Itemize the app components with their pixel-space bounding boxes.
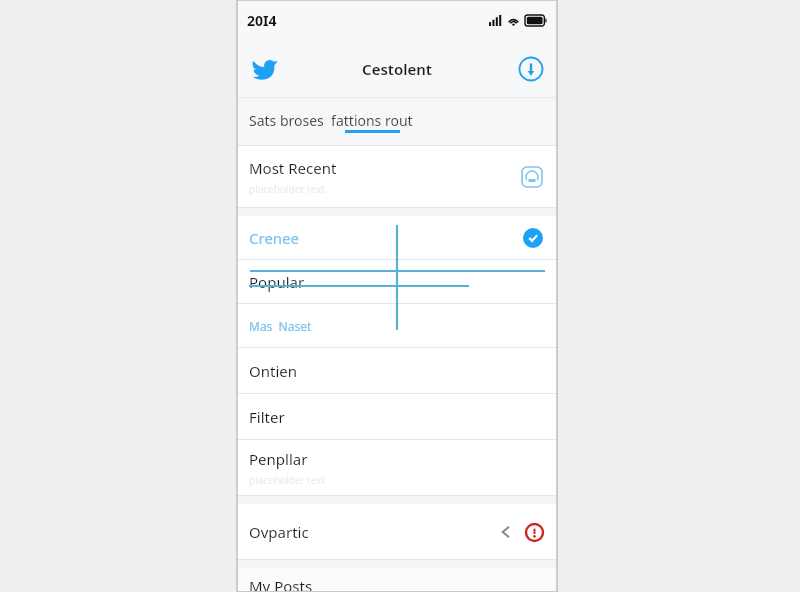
button[interactable]: Filter — [237, 394, 557, 440]
button[interactable]: Popular — [237, 260, 557, 304]
staticText: 20I4 — [247, 11, 277, 30]
staticText: Sats broses fattions rout — [249, 111, 413, 130]
button[interactable]: Ovpartic — [237, 504, 557, 560]
button[interactable]: My Posts — [237, 568, 557, 592]
button[interactable]: Mas Naset — [237, 304, 557, 348]
staticText: My Posts — [249, 576, 313, 592]
button[interactable]: Download update — [513, 51, 549, 87]
button[interactable]: Selected — [519, 224, 547, 252]
button[interactable]: Refresh timeline — [517, 162, 547, 192]
button[interactable]: Sats broses fattions rout — [237, 98, 557, 146]
button[interactable]: Penpllar — [237, 440, 557, 496]
staticText: Crenee — [249, 228, 300, 248]
button[interactable]: Alert — [521, 519, 547, 545]
button[interactable]: Ontien — [237, 348, 557, 394]
button[interactable]: Most Recent — [237, 146, 557, 208]
staticText: Ontien — [249, 361, 298, 381]
staticText: Filter — [249, 407, 285, 427]
staticText: Ovpartic — [249, 522, 309, 542]
button[interactable]: Crenee — [237, 216, 557, 260]
button[interactable]: Twitter home — [245, 49, 285, 89]
staticText: placeholder text — [249, 473, 326, 487]
staticText: Penpllar — [249, 449, 308, 469]
button[interactable]: Back — [493, 519, 519, 545]
staticText: Most Recent — [249, 158, 337, 178]
staticText: placeholder text — [249, 182, 326, 196]
staticText: Popular — [249, 272, 305, 292]
staticText: Mas Naset — [249, 318, 312, 334]
staticText: Cestolent — [362, 59, 432, 79]
